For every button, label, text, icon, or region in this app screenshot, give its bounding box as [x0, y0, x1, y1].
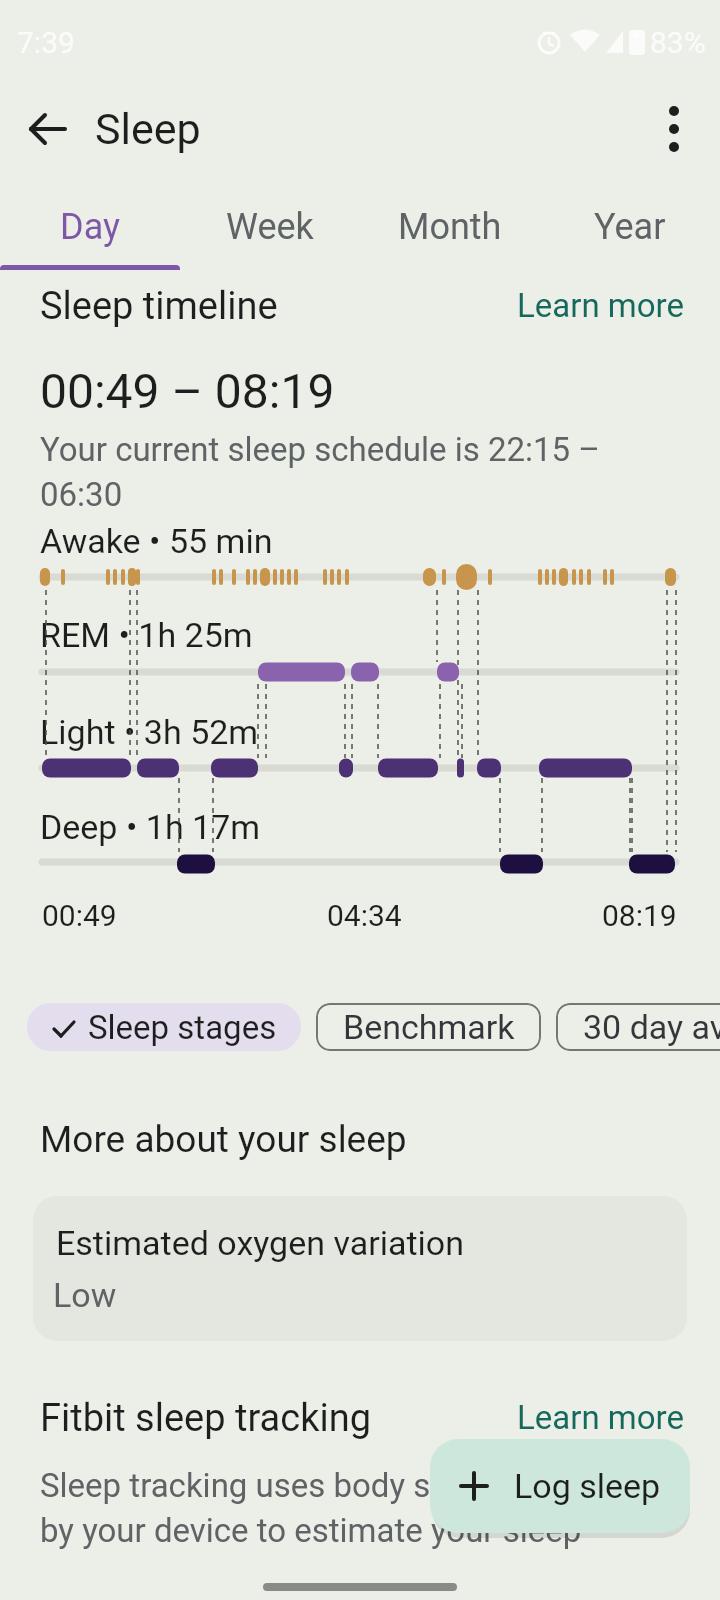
staticText: 06:30 [40, 475, 123, 514]
staticText: Log sleep [514, 1466, 661, 1506]
staticText: Day [60, 206, 120, 248]
staticText: Week [226, 206, 314, 248]
staticText: 00:49 – 08:19 [40, 363, 335, 419]
staticText: Light • 3h 52m [40, 712, 259, 752]
staticText: 00:49 [42, 898, 117, 933]
button[interactable]: Sleep stages [27, 1003, 301, 1051]
staticText: Month [398, 206, 502, 248]
staticText: 83% [650, 25, 706, 60]
staticText: Sleep timeline [40, 284, 278, 329]
staticText: 30 day avg [583, 1007, 720, 1047]
button[interactable]: 30 day avg [556, 1003, 720, 1051]
staticText: Estimated oxygen variation [56, 1223, 464, 1263]
button[interactable] [650, 105, 698, 153]
staticText: 7:39 [17, 25, 75, 60]
staticText: Year [594, 206, 666, 248]
button[interactable]: Benchmark [316, 1003, 541, 1051]
button[interactable]: Learn more [517, 286, 684, 325]
staticText: 04:34 [327, 898, 402, 933]
button[interactable]: Log sleep [430, 1439, 690, 1533]
staticText: Deep • 1h 17m [40, 807, 261, 847]
staticText: 08:19 [602, 898, 677, 933]
button[interactable]: Learn more [517, 1398, 684, 1437]
staticText: Fitbit sleep tracking [40, 1396, 371, 1441]
staticText: Sleep tracking uses body s [40, 1466, 431, 1505]
staticText: Sleep [95, 104, 201, 154]
staticText: Your current sleep schedule is 22:15 – [40, 430, 600, 469]
button[interactable]: Estimated oxygen variation [33, 1196, 687, 1341]
staticText: REM • 1h 25m [40, 615, 253, 655]
staticText: Sleep stages [88, 1008, 277, 1047]
staticText: Low [53, 1275, 117, 1315]
staticText: More about your sleep [40, 1118, 407, 1161]
staticText: by your device to estimate your sleep [40, 1511, 582, 1550]
staticText: Awake • 55 min [40, 521, 273, 561]
staticText: Benchmark [343, 1007, 515, 1047]
button[interactable]: Day [0, 196, 180, 270]
button[interactable]: Month [360, 196, 540, 270]
button[interactable] [24, 105, 72, 153]
button[interactable]: Year [540, 196, 720, 270]
button[interactable]: Week [180, 196, 360, 270]
